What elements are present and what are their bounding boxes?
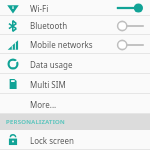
button[interactable]: Switch off <box>115 19 145 33</box>
button[interactable]: Multi SIM <box>0 74 150 94</box>
button[interactable]: Switch on <box>115 1 145 15</box>
staticText: More... <box>30 99 57 110</box>
staticText: Lock screen <box>30 135 75 146</box>
staticText: Mobile networks <box>30 39 93 50</box>
staticText: PERSONALIZATION <box>6 118 66 126</box>
button[interactable]: Wi-Fi <box>0 0 150 16</box>
staticText: Data usage <box>30 59 73 70</box>
staticText: Multi SIM <box>30 79 66 90</box>
staticText: Wi-Fi <box>30 3 49 14</box>
staticText: Bluetooth <box>30 20 68 31</box>
button[interactable]: More... <box>0 94 150 114</box>
button[interactable]: Mobile networks <box>0 35 150 54</box>
button[interactable]: Switch off <box>115 38 145 52</box>
button[interactable]: Bluetooth <box>0 16 150 35</box>
button[interactable]: Data usage <box>0 54 150 74</box>
button[interactable]: Lock screen <box>0 130 150 150</box>
